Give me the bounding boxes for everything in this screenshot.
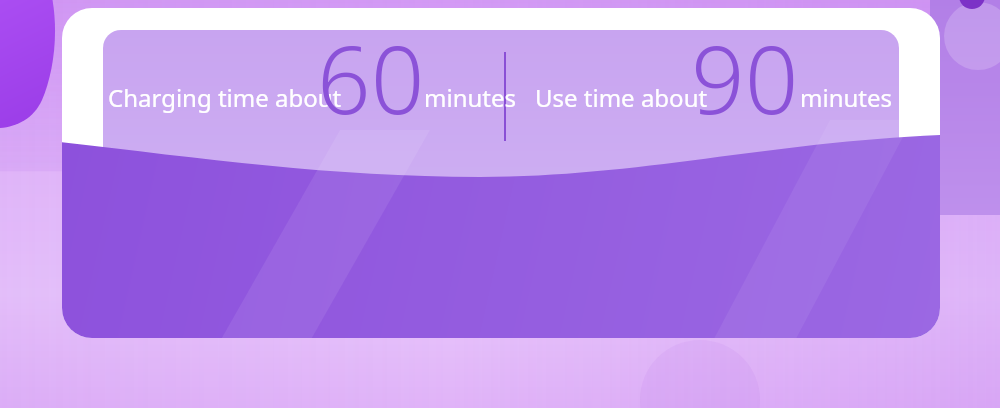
button[interactable]: Charging time and use time card [0,0,1000,408]
